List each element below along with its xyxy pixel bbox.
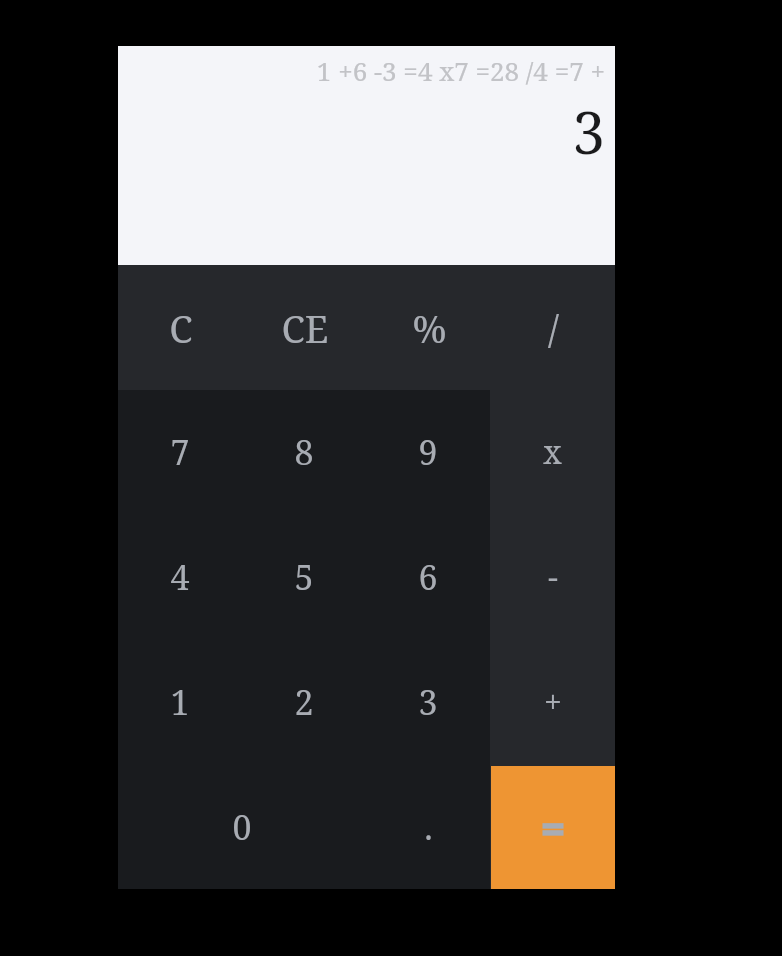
button[interactable]: %: [367, 265, 491, 390]
button[interactable]: 5: [242, 514, 366, 639]
staticText: 6: [418, 554, 438, 600]
staticText: 9: [418, 429, 438, 475]
staticText: %: [412, 302, 447, 354]
staticText: 7: [170, 429, 190, 475]
staticText: 1: [170, 679, 190, 725]
button[interactable]: /: [491, 265, 615, 390]
staticText: C: [169, 302, 193, 354]
button[interactable]: 6: [366, 514, 490, 639]
button[interactable]: CE: [243, 265, 367, 390]
staticText: CE: [281, 302, 329, 354]
staticText: 3: [572, 92, 605, 171]
staticText: 3: [418, 679, 438, 725]
button[interactable]: x: [490, 390, 615, 514]
staticText: 8: [294, 429, 314, 475]
button[interactable]: 7: [118, 390, 242, 514]
button[interactable]: C: [118, 265, 243, 390]
staticText: +: [544, 680, 562, 724]
staticText: 4: [170, 554, 190, 600]
button[interactable]: -: [490, 514, 615, 639]
button[interactable]: 2: [242, 639, 366, 764]
button[interactable]: +: [490, 639, 615, 764]
staticText: .: [424, 804, 433, 850]
staticText: 2: [294, 679, 314, 725]
staticText: 5: [294, 554, 314, 600]
staticText: 0: [232, 804, 252, 850]
staticText: /: [548, 302, 559, 354]
button[interactable]: Equals: [491, 766, 615, 889]
button[interactable]: 8: [242, 390, 366, 514]
staticText: -: [548, 555, 558, 599]
button[interactable]: 9: [366, 390, 490, 514]
button[interactable]: 0: [118, 764, 366, 889]
button[interactable]: .: [366, 764, 490, 889]
staticText: 1 +6 -3 =4 x7 =28 /4 =7 +: [316, 53, 605, 88]
button[interactable]: 4: [118, 514, 242, 639]
button[interactable]: 1: [118, 639, 242, 764]
button[interactable]: 3: [366, 639, 490, 764]
staticText: x: [543, 430, 562, 474]
